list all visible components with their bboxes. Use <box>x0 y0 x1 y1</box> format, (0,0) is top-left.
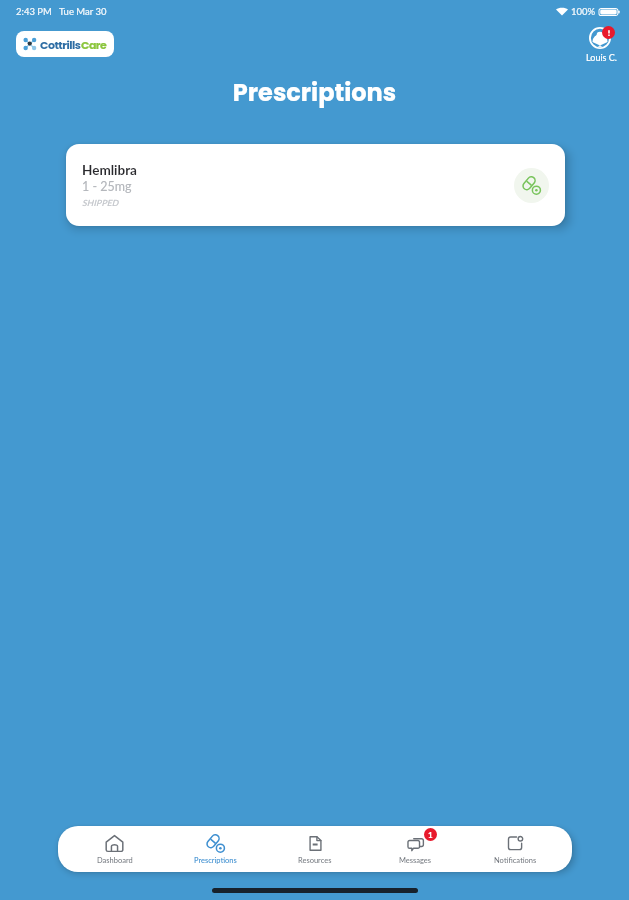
button[interactable]: 1 <box>365 826 465 872</box>
button[interactable]: Notifications <box>465 826 565 872</box>
staticText: 1 <box>428 830 433 840</box>
staticText: Prescriptions <box>0 76 629 110</box>
staticText: Notifications <box>494 856 537 865</box>
button[interactable]: CottrillsCare home <box>16 31 114 57</box>
button[interactable]: Prescriptions <box>165 826 265 872</box>
staticText: Messages <box>399 856 432 865</box>
button[interactable]: Hemlibra <box>66 144 565 226</box>
button[interactable]: Resources <box>265 826 365 872</box>
staticText: 2:43 PM <box>16 6 52 17</box>
staticText: 100% <box>571 6 596 17</box>
staticText: Dashboard <box>97 856 133 865</box>
staticText: Resources <box>298 856 332 865</box>
button[interactable]: Dashboard <box>64 826 165 872</box>
staticText: Cottrills <box>40 37 81 52</box>
staticText: Louis C. <box>586 52 617 63</box>
staticText: Hemlibra <box>82 162 137 178</box>
staticText: 1 - 25mg <box>82 179 132 194</box>
staticText: Prescriptions <box>194 856 237 865</box>
staticText: SHIPPED <box>82 198 119 208</box>
staticText: Tue Mar 30 <box>59 6 107 17</box>
button[interactable]: Account Louis C. <box>584 26 619 63</box>
staticText: Care <box>81 37 107 52</box>
